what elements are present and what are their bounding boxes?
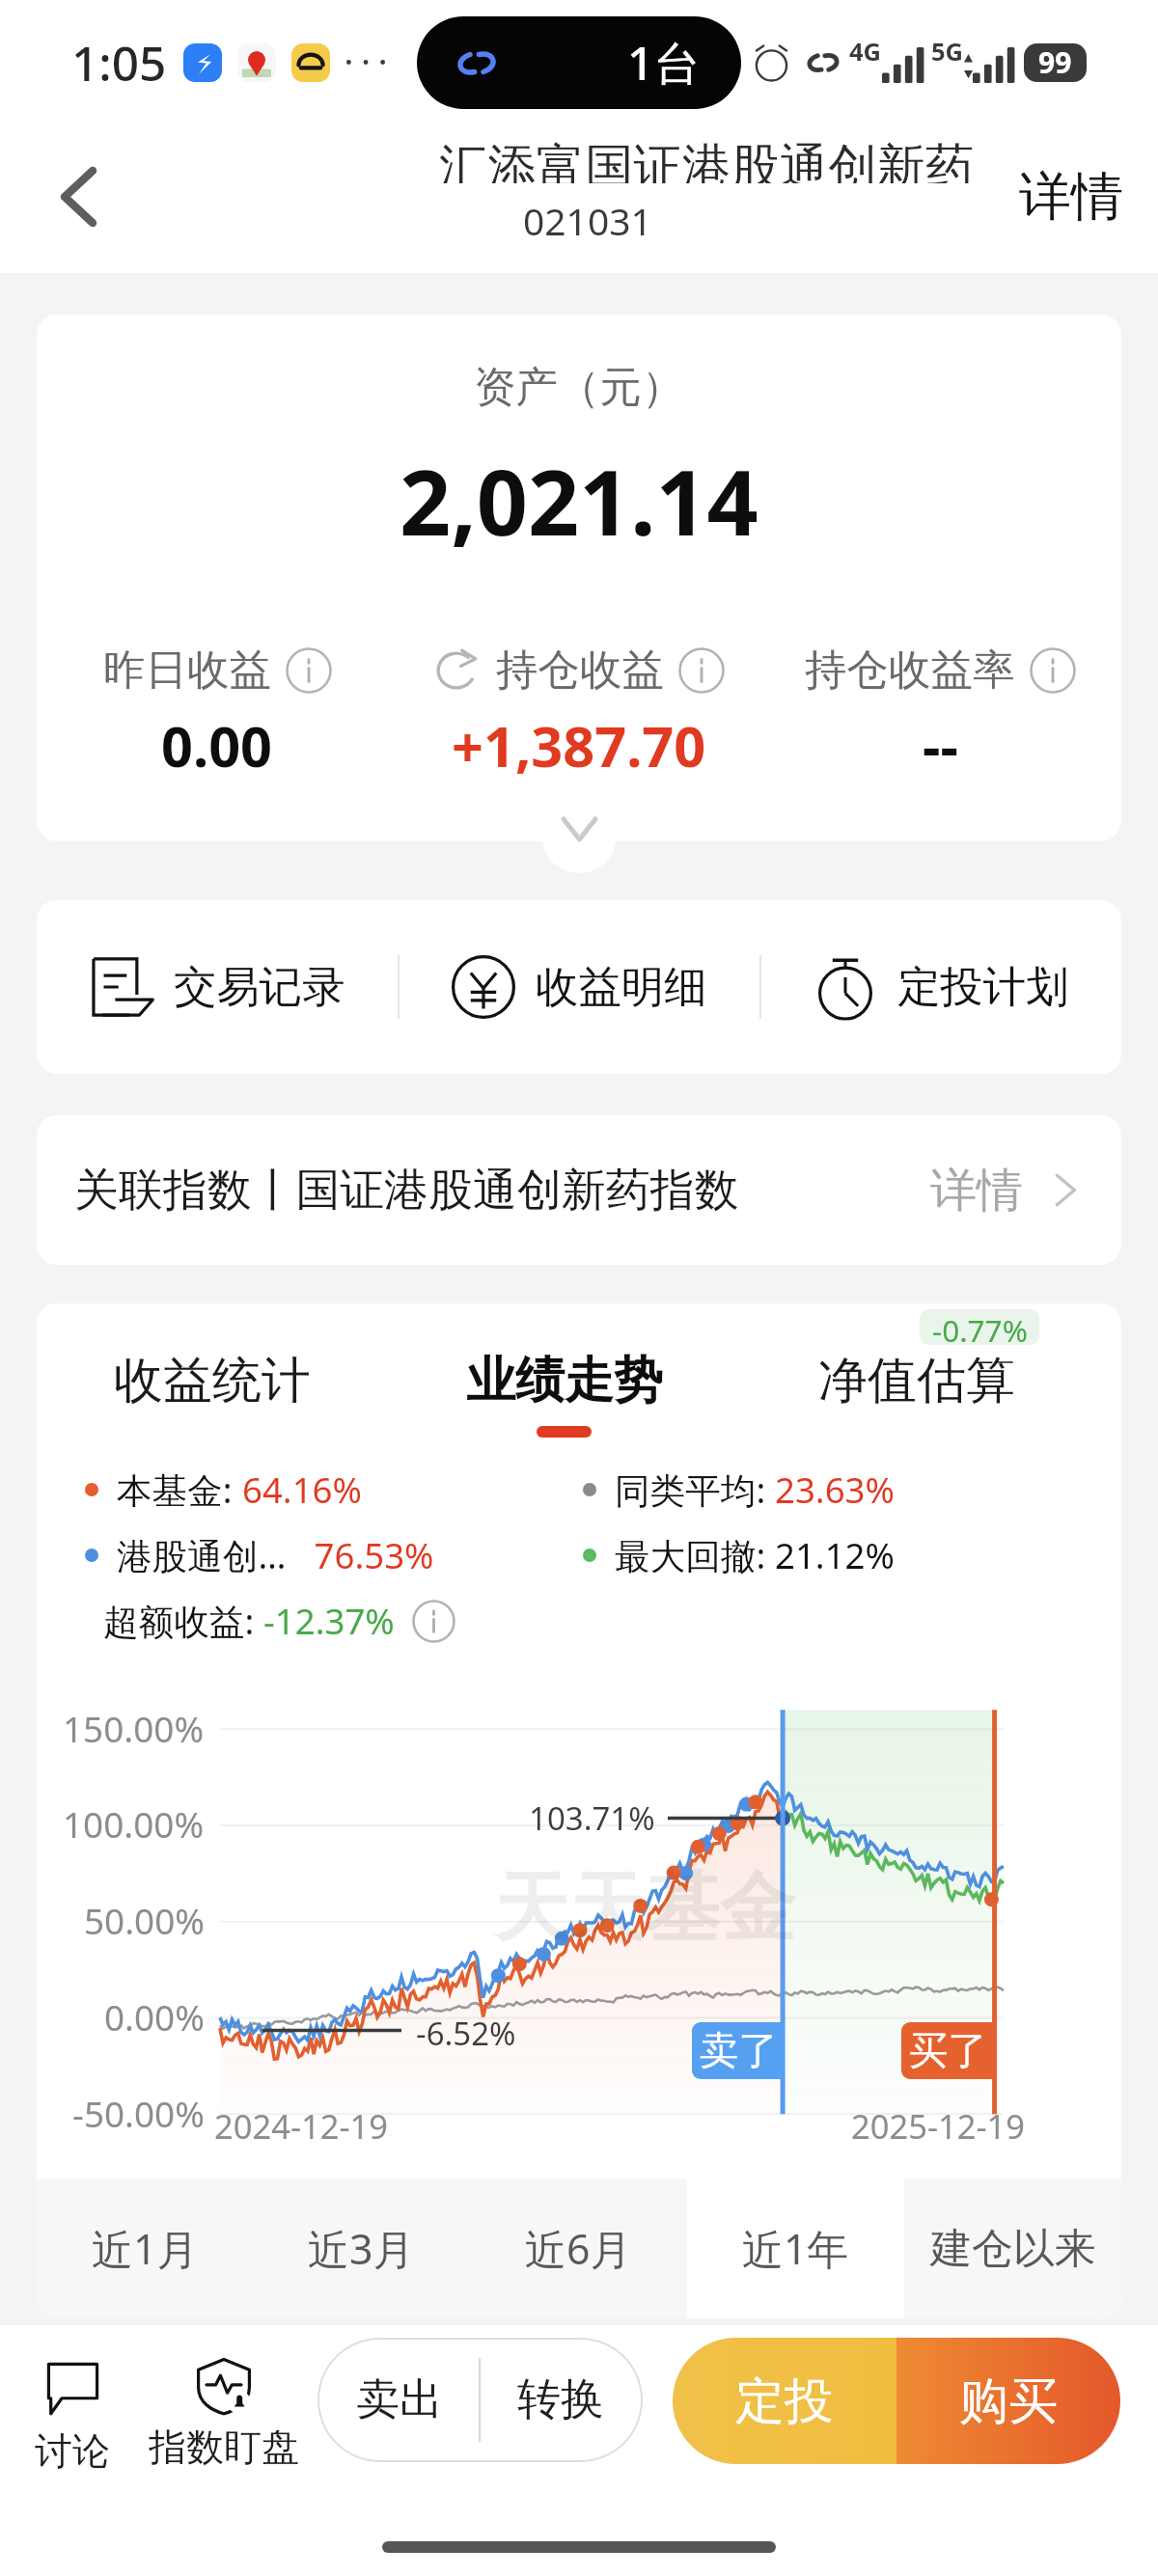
staticText: 购买 xyxy=(959,2370,1058,2432)
button[interactable]: 近1年 xyxy=(687,2179,904,2318)
staticText: 定投计划 xyxy=(897,960,1069,1014)
staticText: 昨日收益 xyxy=(103,644,271,697)
staticText: 汇添富国证港股通创新药ETF联接A xyxy=(439,135,973,183)
staticText: 本基金: xyxy=(117,1466,242,1514)
staticText: 1:05 xyxy=(71,30,167,95)
button[interactable]: 业绩走势 xyxy=(388,1350,740,1438)
staticText: 最大回撤: xyxy=(615,1531,775,1579)
staticText: 50.00% xyxy=(84,1897,205,1945)
button[interactable]: 近1月 xyxy=(37,2179,253,2318)
staticText: 23.63% xyxy=(775,1466,895,1514)
staticText: 港股通创… xyxy=(117,1531,287,1579)
staticText: 交易记录 xyxy=(174,960,345,1014)
staticText: 关联指数丨国证港股通创新药指数 xyxy=(74,1163,739,1219)
button[interactable]: 详情 xyxy=(984,141,1158,253)
staticText: 99 xyxy=(1038,43,1072,81)
staticText: 指数盯盘 xyxy=(149,2424,299,2471)
button[interactable]: 收益统计 xyxy=(37,1350,388,1438)
staticText: 近1月 xyxy=(92,2220,199,2277)
staticText: 近6月 xyxy=(525,2220,632,2277)
button[interactable]: 交易记录 xyxy=(37,900,398,1074)
staticText: 天天基金 xyxy=(494,1861,795,1956)
button[interactable]: 近6月 xyxy=(470,2179,687,2318)
staticText: 超额收益: xyxy=(103,1597,263,1645)
staticText: 103.71% xyxy=(529,1796,655,1840)
staticText: 21.12% xyxy=(775,1531,895,1579)
staticText: -50.00% xyxy=(72,2090,205,2138)
staticText: 0.00% xyxy=(104,1993,205,2042)
staticText: 2025-12-19 xyxy=(851,2103,1026,2149)
staticText: -6.52% xyxy=(416,2012,516,2055)
button[interactable]: 指数盯盘 xyxy=(149,2357,299,2471)
button[interactable]: 转换 xyxy=(481,2340,641,2460)
staticText: 2,021.14 xyxy=(400,440,758,562)
staticText: 转换 xyxy=(517,2372,604,2427)
staticText: 0.00 xyxy=(161,707,273,782)
staticText: 资产（元） xyxy=(474,361,684,414)
staticText: 近1年 xyxy=(742,2220,849,2277)
staticText: 4G xyxy=(849,35,882,69)
staticText: -- xyxy=(923,707,958,782)
staticText: 收益统计 xyxy=(114,1350,311,1411)
staticText: 2024-12-19 xyxy=(214,2103,389,2149)
button[interactable]: Back xyxy=(6,124,151,269)
button[interactable]: 净值估算 xyxy=(740,1350,1092,1438)
staticText: 64.16% xyxy=(242,1466,362,1514)
button[interactable]: 收益明细 xyxy=(400,900,759,1074)
staticText: 讨论 xyxy=(35,2427,110,2475)
staticText: 持仓收益率 xyxy=(805,644,1015,697)
button[interactable]: 卖出 xyxy=(319,2340,479,2460)
staticText: 建仓以来 xyxy=(930,2223,1096,2275)
staticText: 021031 xyxy=(523,195,652,246)
staticText: 详情 xyxy=(1019,164,1123,230)
button[interactable]: 购买 xyxy=(896,2338,1120,2464)
staticText: 150.00% xyxy=(63,1705,205,1753)
staticText: -0.77% xyxy=(932,1309,1028,1345)
staticText: 76.53% xyxy=(287,1531,434,1579)
staticText: 业绩走势 xyxy=(466,1350,663,1411)
button[interactable]: 建仓以来 xyxy=(904,2179,1121,2318)
staticText: -12.37% xyxy=(263,1597,395,1645)
staticText: 5G xyxy=(931,35,964,69)
button[interactable]: 定投 xyxy=(673,2338,896,2464)
staticText: 近3月 xyxy=(308,2220,415,2277)
staticText: 卖出 xyxy=(356,2372,443,2427)
staticText: 卖了 xyxy=(700,2026,778,2075)
button[interactable]: 关联指数丨国证港股通创新药指数 xyxy=(37,1115,1121,1265)
staticText: 详情 xyxy=(930,1162,1023,1219)
button[interactable]: 讨论 xyxy=(35,2361,110,2475)
staticText: +1,387.70 xyxy=(452,707,706,782)
staticText: 同类平均: xyxy=(615,1466,775,1514)
button[interactable]: 定投计划 xyxy=(761,900,1121,1074)
staticText: 定投 xyxy=(735,2370,834,2432)
staticText: 100.00% xyxy=(63,1800,205,1849)
staticText: 持仓收益 xyxy=(496,644,664,697)
staticText: 1台 xyxy=(627,31,701,95)
button[interactable]: 近3月 xyxy=(253,2179,470,2318)
button[interactable]: Expand xyxy=(541,798,617,873)
staticText: 买了 xyxy=(909,2026,987,2075)
staticText: 收益明细 xyxy=(536,960,707,1014)
staticText: 净值估算 xyxy=(818,1350,1015,1411)
